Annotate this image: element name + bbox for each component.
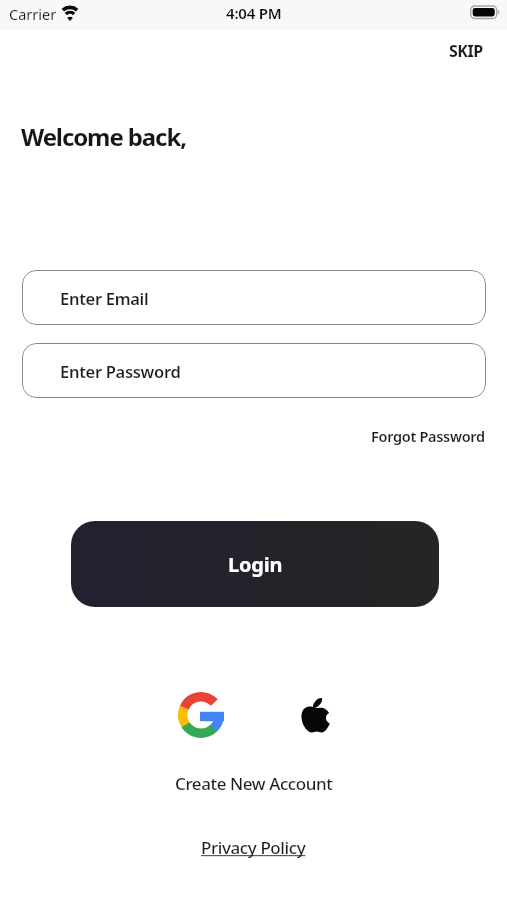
button[interactable]: Privacy Policy xyxy=(201,836,306,859)
button[interactable]: Enter Email xyxy=(22,270,486,325)
button[interactable] xyxy=(178,692,224,738)
staticText: Login xyxy=(228,551,283,578)
staticText: Enter Email xyxy=(60,287,149,309)
staticText: Enter Password xyxy=(60,360,181,382)
staticText: Welcome back, xyxy=(21,120,186,153)
button[interactable]: Create New Account xyxy=(175,772,333,795)
button[interactable]: SKIP xyxy=(449,40,483,62)
button[interactable] xyxy=(298,695,332,735)
staticText: Carrier xyxy=(9,4,57,24)
button[interactable]: Enter Password xyxy=(22,343,486,398)
button[interactable]: Login xyxy=(71,521,439,607)
button[interactable]: Forgot Password xyxy=(371,426,485,446)
staticText: 4:04 PM xyxy=(226,3,282,23)
